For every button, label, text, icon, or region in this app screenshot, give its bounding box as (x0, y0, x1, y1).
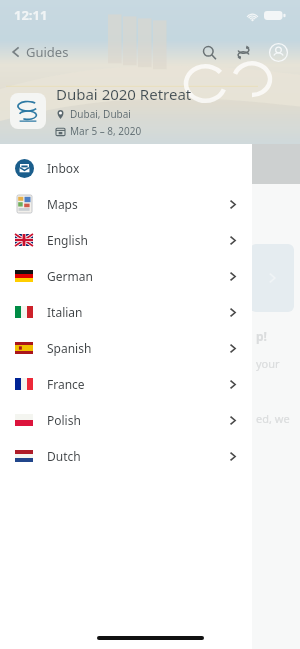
button[interactable]: Inbox (0, 150, 252, 186)
button[interactable]: Close navigation drawer (0, 0, 300, 649)
staticText: France (47, 376, 85, 392)
staticText: German (47, 268, 93, 284)
staticText: Polish (47, 412, 81, 428)
staticText: Guides (26, 43, 69, 61)
staticText: Dubai, Dubai (70, 107, 131, 121)
staticText: Inbox (47, 160, 80, 176)
button[interactable]: German (0, 258, 252, 294)
button[interactable]: Maps (0, 186, 252, 222)
button[interactable]: Dutch (0, 438, 252, 474)
staticText: Mar 5 – 8, 2020 (70, 124, 142, 138)
button[interactable]: Back to Guides (0, 43, 77, 61)
staticText: Spanish (47, 340, 92, 356)
staticText: Italian (47, 304, 83, 320)
staticText: English (47, 232, 88, 248)
staticText: Maps (47, 196, 78, 212)
button[interactable]: English (0, 222, 252, 258)
button[interactable]: Polish (0, 402, 252, 438)
button[interactable]: Dubai 2020 Retreat (10, 84, 290, 138)
staticText: your (256, 356, 280, 371)
button[interactable]: Spanish (0, 330, 252, 366)
button[interactable]: Refresh (228, 38, 258, 66)
button[interactable]: Profile (262, 38, 294, 66)
button[interactable]: Italian (0, 294, 252, 330)
button[interactable]: France (0, 366, 252, 402)
staticText: Dubai 2020 Retreat (56, 84, 192, 104)
button[interactable]: Search (194, 38, 224, 66)
staticText: Dutch (47, 448, 81, 464)
staticText: 12:11 (14, 6, 48, 24)
button[interactable] (250, 244, 294, 312)
staticText: p! (256, 328, 267, 344)
staticText: ed, we (256, 411, 290, 426)
